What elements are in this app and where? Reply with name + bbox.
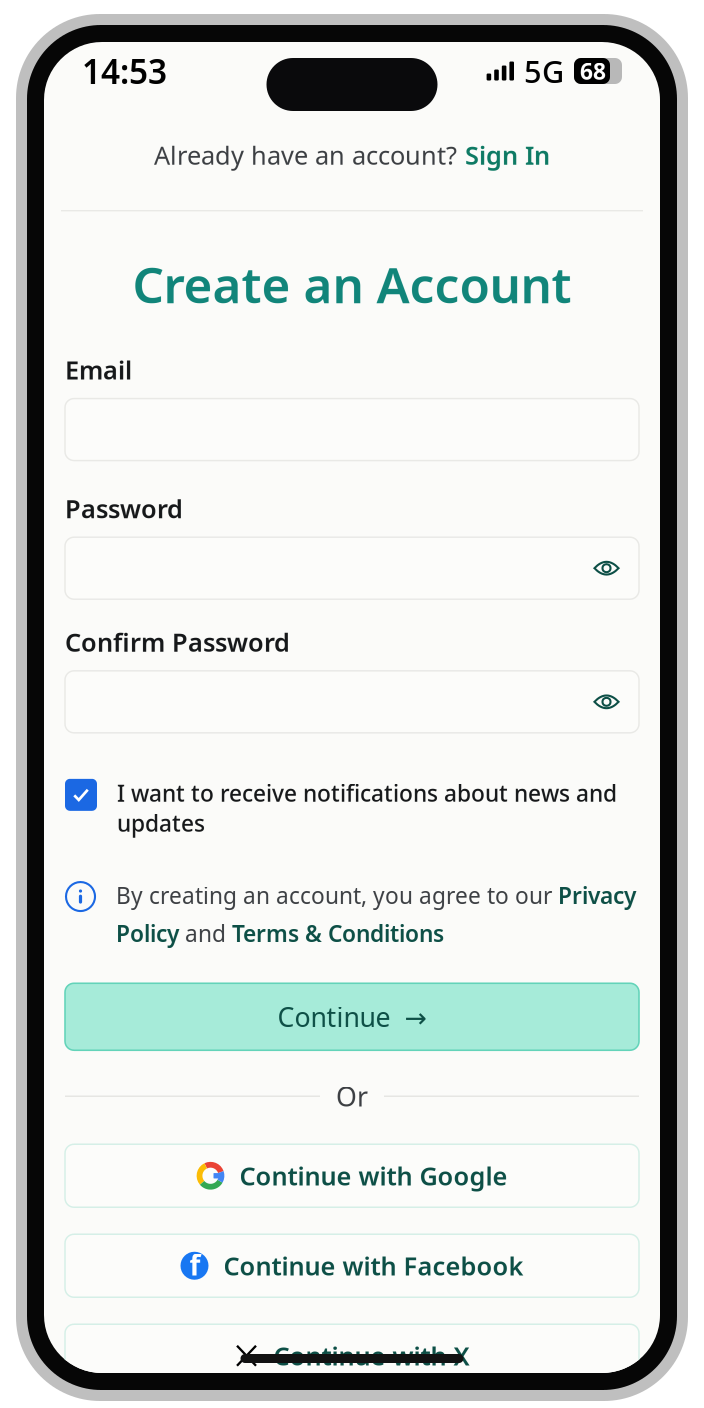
button[interactable]: Show password [588,679,625,724]
staticText: Policy [116,918,179,948]
button[interactable]: f [65,1234,639,1297]
staticText: Or [336,1078,368,1114]
button[interactable]: Continue with X [65,1324,639,1387]
button[interactable]: Continue → [65,983,639,1050]
staticText: Continue with Google [239,1159,507,1192]
staticText: 14:53 [82,49,167,93]
staticText: Create an Account [132,251,571,317]
staticText: Terms & Conditions [232,918,444,948]
button[interactable]: Already have an account? [44,100,660,210]
staticText: and [179,918,232,948]
button[interactable]: Continue with Google [65,1144,639,1207]
staticText: 5G [524,51,564,91]
staticText: 68 [580,56,606,86]
staticText: I want to receive notifications about ne… [117,778,617,838]
staticText: f [189,1246,200,1283]
staticText: By creating an account, you agree to our [116,880,558,910]
staticText: Email [65,353,132,386]
staticText: Password [65,492,183,525]
staticText: Sign In [465,138,550,172]
staticText: Continue with X [273,1339,469,1372]
staticText: Privacy [558,880,636,910]
button[interactable]: I want to receive notifications about ne… [65,778,639,838]
staticText: Continue → [277,999,426,1034]
button[interactable]: Show password [588,546,625,591]
staticText: Continue with Facebook [223,1249,523,1282]
staticText: Confirm Password [65,625,290,659]
staticText: Already have an account? [154,138,457,172]
